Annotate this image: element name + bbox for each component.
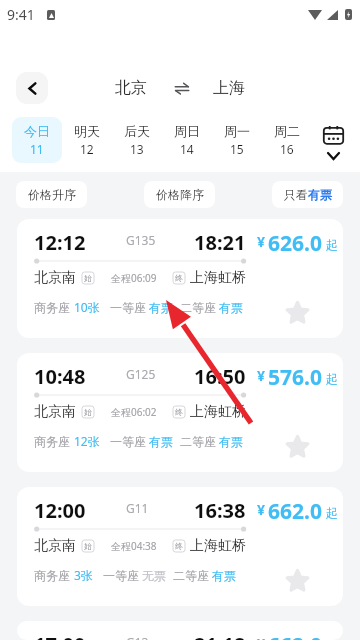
button[interactable]: Favourite <box>282 431 312 461</box>
staticText: 只看 <box>284 187 308 202</box>
staticText: 12:12 <box>34 229 86 256</box>
button[interactable]: 后天 <box>112 117 162 163</box>
staticText: 终 <box>175 407 183 417</box>
staticText: 北京南 <box>34 269 76 287</box>
staticText: 商务座 <box>34 434 70 449</box>
other: Swap <box>175 82 189 95</box>
button[interactable]: 周一 <box>212 117 262 163</box>
staticText: 起 <box>326 371 338 386</box>
button[interactable]: Favourite <box>282 565 312 595</box>
staticText: 全程06:02 <box>111 405 157 419</box>
staticText: 一等座 <box>110 300 146 315</box>
staticText: 二等座 <box>180 300 216 315</box>
staticText: 12张 <box>74 433 100 449</box>
staticText: 明天 <box>74 123 100 139</box>
button[interactable]: Favourite <box>282 297 312 327</box>
staticText: 10张 <box>74 299 100 315</box>
staticText: G125 <box>126 366 156 382</box>
staticText: 16 <box>280 141 294 157</box>
button[interactable]: Back <box>16 72 48 104</box>
staticText: 有票 <box>149 434 173 449</box>
staticText: 一等座 <box>103 568 139 583</box>
staticText: 二等座 <box>180 434 216 449</box>
staticText: 无票 <box>142 568 166 583</box>
staticText: 始 <box>84 273 92 283</box>
staticText: 13 <box>130 141 144 157</box>
button[interactable]: Pick date <box>310 117 356 163</box>
staticText: 626.0 <box>268 229 322 258</box>
staticText: 12 <box>80 141 94 157</box>
staticText: 14 <box>180 141 194 157</box>
staticText: 周二 <box>274 123 300 139</box>
staticText: 起 <box>326 639 338 640</box>
staticText: 9:41 <box>7 5 35 24</box>
staticText: 10:48 <box>34 363 86 390</box>
staticText: 一等座 <box>110 434 146 449</box>
staticText: 3张 <box>74 567 93 583</box>
staticText: 后天 <box>124 123 150 139</box>
button[interactable]: 周二 <box>262 117 312 163</box>
staticText: 16:38 <box>194 497 246 524</box>
staticText: 有票 <box>219 434 243 449</box>
staticText: 662.0 <box>268 631 322 640</box>
staticText: 有票 <box>149 300 173 315</box>
staticText: 今日 <box>24 123 50 139</box>
staticText: 全程04:38 <box>111 539 157 553</box>
staticText: 全程06:09 <box>111 271 157 285</box>
staticText: ¥ <box>257 232 266 251</box>
staticText: 始 <box>84 407 92 417</box>
staticText: 18:21 <box>194 229 246 256</box>
staticText: 周一 <box>224 123 250 139</box>
button[interactable]: 10:48 <box>17 353 343 472</box>
staticText: 价格升序 <box>28 187 76 202</box>
staticText: 上海 <box>213 78 245 98</box>
staticText: 起 <box>326 505 338 520</box>
staticText: 上海虹桥 <box>190 269 246 287</box>
staticText: 11 <box>30 141 44 157</box>
staticText: 二等座 <box>173 568 209 583</box>
staticText: 终 <box>175 541 183 551</box>
staticText: ¥ <box>257 366 266 385</box>
staticText: 终 <box>175 273 183 283</box>
staticText: 周日 <box>174 123 200 139</box>
button[interactable]: 12:12 <box>17 219 343 338</box>
staticText: 662.0 <box>268 497 322 526</box>
staticText: 有票 <box>219 300 243 315</box>
staticText: 商务座 <box>34 300 70 315</box>
button[interactable]: 价格降序 <box>144 181 215 208</box>
staticText: 有票 <box>308 187 332 202</box>
staticText: G135 <box>126 232 156 248</box>
staticText: 16:50 <box>194 363 246 390</box>
staticText: ¥ <box>257 500 266 519</box>
staticText: 15 <box>230 141 244 157</box>
staticText: ¥ <box>257 634 266 640</box>
button[interactable]: 17:00 <box>17 621 343 640</box>
staticText: 21:18 <box>194 631 246 640</box>
staticText: G11 <box>126 500 149 516</box>
staticText: 北京 <box>115 78 147 98</box>
button[interactable]: 今日 <box>12 117 62 163</box>
staticText: 576.0 <box>268 363 322 392</box>
button[interactable]: 明天 <box>62 117 112 163</box>
staticText: G13 <box>126 634 149 640</box>
button[interactable]: 周日 <box>162 117 212 163</box>
staticText: 价格降序 <box>156 187 204 202</box>
staticText: 始 <box>84 541 92 551</box>
staticText: 北京南 <box>34 537 76 555</box>
staticText: 北京南 <box>34 403 76 421</box>
staticText: 12:00 <box>34 497 86 524</box>
button[interactable]: 价格升序 <box>16 181 87 208</box>
staticText: 起 <box>326 237 338 252</box>
staticText: 商务座 <box>34 568 70 583</box>
staticText: 上海虹桥 <box>190 537 246 555</box>
staticText: 有票 <box>212 568 236 583</box>
button[interactable]: 只看 <box>272 181 343 208</box>
button[interactable]: 12:00 <box>17 487 343 606</box>
staticText: 17:00 <box>34 631 86 640</box>
staticText: 上海虹桥 <box>190 403 246 421</box>
